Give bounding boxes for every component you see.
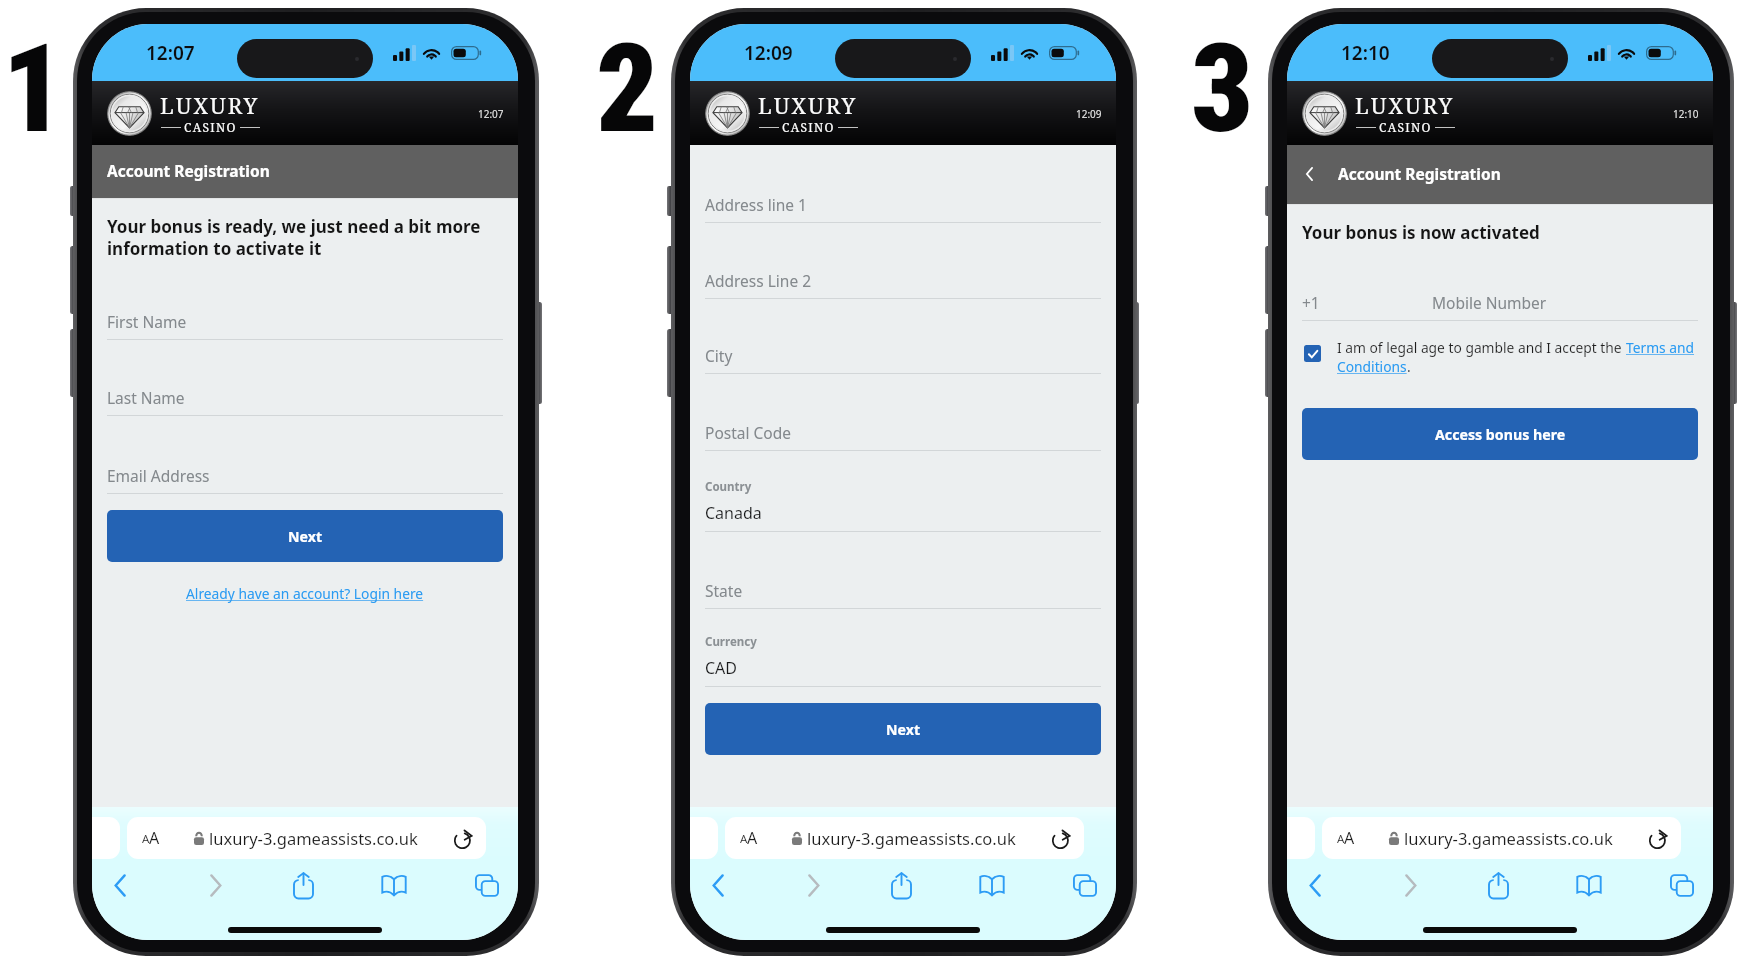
button[interactable]: Share — [281, 865, 325, 905]
staticText: 12:10 — [1673, 107, 1699, 121]
button[interactable]: Access bonus here — [1302, 408, 1698, 460]
staticText: Email Address — [107, 465, 210, 486]
staticText: A — [149, 827, 160, 849]
staticText: 3 — [1191, 18, 1254, 161]
button[interactable]: Forward — [193, 865, 237, 905]
button[interactable]: Reload — [452, 827, 474, 849]
button[interactable]: Share — [879, 865, 923, 905]
staticText: I am of legal age to gamble and I accept… — [1337, 338, 1626, 357]
button[interactable]: Bookmarks — [372, 865, 416, 905]
button[interactable]: +1 — [1287, 292, 1713, 313]
button[interactable]: Postal Code — [690, 422, 1116, 443]
button[interactable]: State — [690, 580, 1116, 601]
staticText: Canada — [705, 502, 762, 524]
button[interactable]: Tabs — [1063, 865, 1107, 905]
button[interactable]: Country — [690, 479, 1116, 524]
staticText: State — [705, 580, 743, 601]
button[interactable]: Forward — [791, 865, 835, 905]
staticText: Postal Code — [705, 422, 791, 443]
staticText: +1 — [1302, 292, 1320, 313]
staticText: Currency — [705, 634, 757, 650]
staticText: Last Name — [107, 387, 185, 408]
staticText: 2 — [596, 18, 659, 161]
button[interactable]: Terms and — [1626, 338, 1695, 357]
button[interactable]: Bookmarks — [1567, 865, 1611, 905]
button[interactable]: Email Address — [92, 465, 518, 486]
staticText: First Name — [107, 311, 187, 332]
staticText: Account Registration — [107, 160, 270, 181]
staticText: CAD — [705, 657, 738, 679]
button[interactable]: Tabs — [1660, 865, 1704, 905]
staticText: A — [1337, 831, 1345, 847]
staticText: . — [1407, 357, 1411, 376]
staticText: CASINO — [184, 119, 237, 135]
button[interactable]: Address Line 2 — [690, 270, 1116, 291]
staticText: Your bonus is now activated — [1302, 221, 1540, 244]
staticText: A — [740, 831, 748, 847]
staticText: LUXURY — [758, 90, 858, 120]
staticText: 1 — [2, 18, 65, 161]
staticText: A — [747, 827, 758, 849]
staticText: Next — [288, 527, 323, 546]
button[interactable]: Reload — [1050, 827, 1072, 849]
button[interactable]: Back — [1293, 865, 1337, 905]
staticText: Already have an account? Login here — [186, 584, 424, 603]
staticText: CASINO — [782, 119, 835, 135]
staticText: Access bonus here — [1435, 425, 1566, 444]
staticText: 12:07 — [146, 40, 195, 66]
button[interactable]: Back — [1302, 166, 1317, 181]
staticText: 12:10 — [1341, 40, 1390, 66]
button[interactable]: A — [1322, 817, 1681, 859]
staticText: A — [1344, 827, 1355, 849]
staticText: Next — [886, 720, 921, 739]
staticText: City — [705, 345, 733, 366]
button[interactable]: A — [725, 817, 1084, 859]
button[interactable]: A — [127, 817, 486, 859]
staticText: LUXURY — [1355, 90, 1455, 120]
button[interactable]: Forward — [1388, 865, 1432, 905]
staticText: Address line 1 — [705, 194, 807, 215]
staticText: 12:09 — [744, 40, 793, 66]
button[interactable]: Next — [107, 510, 503, 562]
button[interactable]: First Name — [92, 311, 518, 332]
button[interactable]: Address line 1 — [690, 194, 1116, 215]
button[interactable]: City — [690, 345, 1116, 366]
button[interactable]: Bookmarks — [970, 865, 1014, 905]
staticText: luxury-3.gameassists.co.uk — [209, 827, 418, 849]
button[interactable]: Already have an account? Login here — [186, 584, 424, 603]
button[interactable]: Currency — [690, 634, 1116, 679]
button[interactable]: Next — [705, 703, 1101, 755]
staticText: 12:09 — [1076, 107, 1102, 121]
staticText: LUXURY — [160, 90, 260, 120]
button[interactable]: Last Name — [92, 387, 518, 408]
staticText: luxury-3.gameassists.co.uk — [1404, 827, 1613, 849]
staticText: Your bonus is ready, we just need a bit … — [107, 215, 500, 260]
staticText: Mobile Number — [1432, 292, 1547, 313]
staticText: Account Registration — [1338, 163, 1501, 184]
staticText: 12:07 — [478, 107, 504, 121]
button[interactable]: Conditions — [1337, 357, 1407, 376]
staticText: Country — [705, 479, 752, 495]
staticText: A — [142, 831, 150, 847]
button[interactable]: Back — [98, 865, 142, 905]
button[interactable]: Tabs — [465, 865, 509, 905]
button[interactable]: Share — [1476, 865, 1520, 905]
button[interactable]: Back — [696, 865, 740, 905]
button[interactable]: Reload — [1647, 827, 1669, 849]
staticText: CASINO — [1379, 119, 1432, 135]
staticText: luxury-3.gameassists.co.uk — [807, 827, 1016, 849]
button[interactable]: I am of legal age to gamble — [1304, 345, 1321, 362]
staticText: Address Line 2 — [705, 270, 812, 291]
